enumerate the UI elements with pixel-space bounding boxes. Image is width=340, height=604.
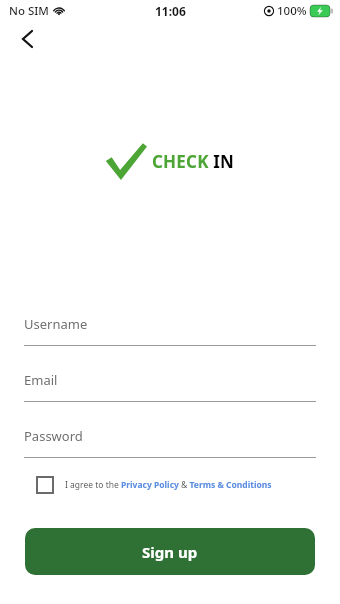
- staticText: Password: [24, 427, 83, 445]
- button[interactable]: I agree to the Privacy Policy & Terms & …: [36, 476, 316, 494]
- button[interactable]: Password: [24, 427, 316, 458]
- staticText: No SIM: [9, 3, 49, 19]
- staticText: Email: [24, 371, 58, 389]
- button[interactable]: Back: [12, 24, 42, 54]
- button[interactable]: Email: [24, 371, 316, 402]
- staticText: 100%: [277, 3, 307, 19]
- staticText: Sign up: [142, 542, 198, 562]
- button[interactable]: Username: [24, 315, 316, 346]
- staticText: Username: [24, 315, 88, 333]
- staticText: 11:06: [155, 3, 186, 19]
- staticText: I agree to the Privacy Policy & Terms & …: [65, 479, 272, 491]
- button[interactable]: Sign up: [25, 528, 315, 575]
- staticText: CHECK IN: [152, 150, 235, 173]
